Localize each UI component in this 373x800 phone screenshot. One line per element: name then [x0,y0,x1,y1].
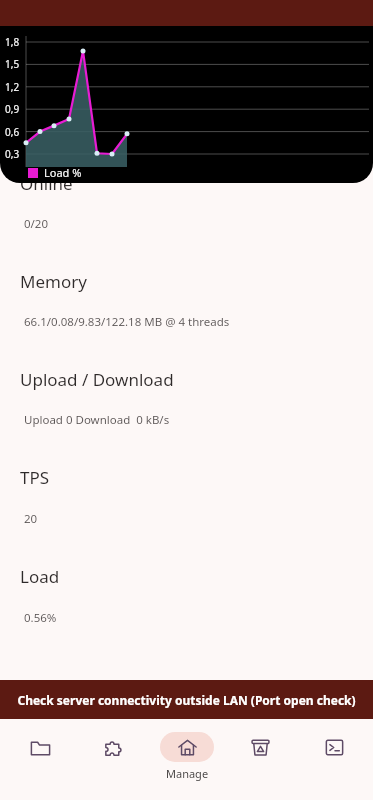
button[interactable]: 1,8 [0,26,373,183]
staticText: Load [20,565,60,588]
staticText: 0.56% [24,610,57,626]
staticText: 1,5 [5,57,20,71]
staticText: 0,3 [5,147,20,161]
staticText: Memory [20,270,87,293]
staticText: 0,6 [5,125,20,139]
button[interactable]: Files [6,732,74,762]
staticText: 66.1/0.08/9.83/122.18 MB @ 4 threads [24,314,230,330]
staticText: Load % [44,165,82,180]
staticText: Upload 0 Download 0 kB/s [24,412,170,428]
staticText: Check server connectivity outside LAN (P… [17,692,356,708]
button[interactable]: Console [300,732,368,762]
staticText: 0,9 [5,102,20,116]
staticText: Upload / Download [20,368,174,391]
button[interactable]: Manage [153,732,221,781]
staticText: 1,2 [5,80,20,94]
button[interactable]: Plugins [79,732,147,762]
button[interactable]: Backups [226,732,294,762]
staticText: 0/20 [24,216,49,232]
staticText: Online [20,172,73,195]
button[interactable]: Check server connectivity outside LAN (P… [0,680,373,719]
staticText: TPS [20,466,50,489]
staticText: 20 [24,511,38,527]
staticText: 1,8 [5,35,20,49]
staticText: Manage [166,766,209,781]
